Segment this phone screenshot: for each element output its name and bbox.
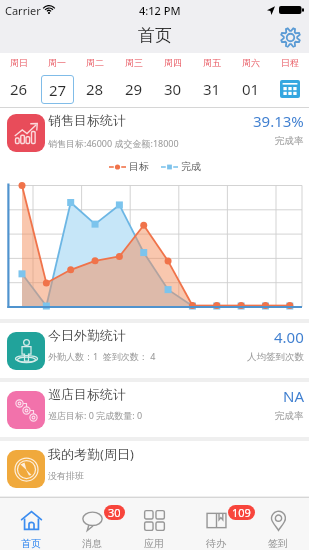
- button[interactable]: 销售目标统计: [0, 108, 309, 157]
- staticText: 周三: [125, 57, 143, 68]
- staticText: 28: [86, 79, 104, 99]
- staticText: Carrier: [5, 3, 41, 18]
- staticText: 27: [49, 80, 67, 100]
- staticText: 周一: [48, 57, 66, 68]
- staticText: 周五: [203, 57, 221, 68]
- button[interactable]: 29: [114, 71, 153, 107]
- button[interactable]: 26: [0, 71, 38, 107]
- staticText: 消息: [82, 537, 102, 550]
- staticText: 4:12 PM: [139, 3, 181, 18]
- staticText: 巡店目标: 0 完成数量: 0: [48, 409, 143, 421]
- button[interactable]: 109: [185, 498, 247, 550]
- button[interactable]: 30: [153, 71, 192, 107]
- staticText: 没有排班: [48, 470, 84, 481]
- button[interactable]: 今日外勤统计: [0, 323, 309, 378]
- button[interactable]: 签到: [247, 498, 309, 550]
- staticText: 外勤人数：1 签到次数： 4: [48, 350, 156, 362]
- button[interactable]: 巡店目标统计: [0, 382, 309, 437]
- staticText: 日程: [281, 57, 299, 68]
- staticText: 我的考勤(周日): [48, 445, 134, 463]
- staticText: 完成: [181, 160, 201, 173]
- button[interactable]: 01: [231, 71, 270, 107]
- staticText: 周六: [242, 57, 260, 68]
- staticText: 目标: [129, 160, 149, 173]
- staticText: 待办: [206, 537, 226, 550]
- staticText: 签到: [268, 537, 288, 550]
- staticText: 01: [242, 79, 260, 99]
- button[interactable]: Settings: [277, 24, 303, 50]
- staticText: 完成率: [275, 410, 304, 422]
- button[interactable]: 应用: [123, 498, 185, 550]
- staticText: 首页: [21, 537, 41, 550]
- button[interactable]: 日程: [270, 71, 309, 107]
- staticText: 39.13%: [253, 111, 304, 131]
- staticText: 首页: [138, 25, 172, 46]
- button[interactable]: 28: [76, 71, 114, 107]
- staticText: 31: [203, 79, 221, 99]
- staticText: 完成率: [275, 135, 304, 147]
- staticText: 应用: [144, 537, 164, 550]
- staticText: 周日: [10, 57, 28, 68]
- button[interactable]: 27: [38, 71, 76, 107]
- staticText: 周四: [164, 57, 182, 68]
- staticText: 29: [125, 79, 143, 99]
- staticText: 销售目标统计: [48, 112, 126, 128]
- staticText: 26: [10, 79, 28, 99]
- other: 日程: [279, 78, 301, 100]
- staticText: 巡店目标统计: [48, 386, 126, 402]
- button[interactable]: 首页: [0, 498, 61, 550]
- staticText: NA: [283, 386, 304, 406]
- staticText: 周二: [86, 57, 104, 68]
- button[interactable]: 30: [61, 498, 123, 550]
- staticText: 人均签到次数: [247, 351, 304, 363]
- staticText: 109: [232, 505, 251, 520]
- button[interactable]: 31: [192, 71, 231, 107]
- staticText: 销售目标:46000 成交金额:18000: [48, 137, 179, 149]
- staticText: 30: [108, 505, 121, 520]
- button[interactable]: 我的考勤(周日): [0, 441, 309, 496]
- staticText: 今日外勤统计: [48, 327, 126, 343]
- staticText: 4.00: [274, 327, 304, 347]
- staticText: 30: [164, 79, 182, 99]
